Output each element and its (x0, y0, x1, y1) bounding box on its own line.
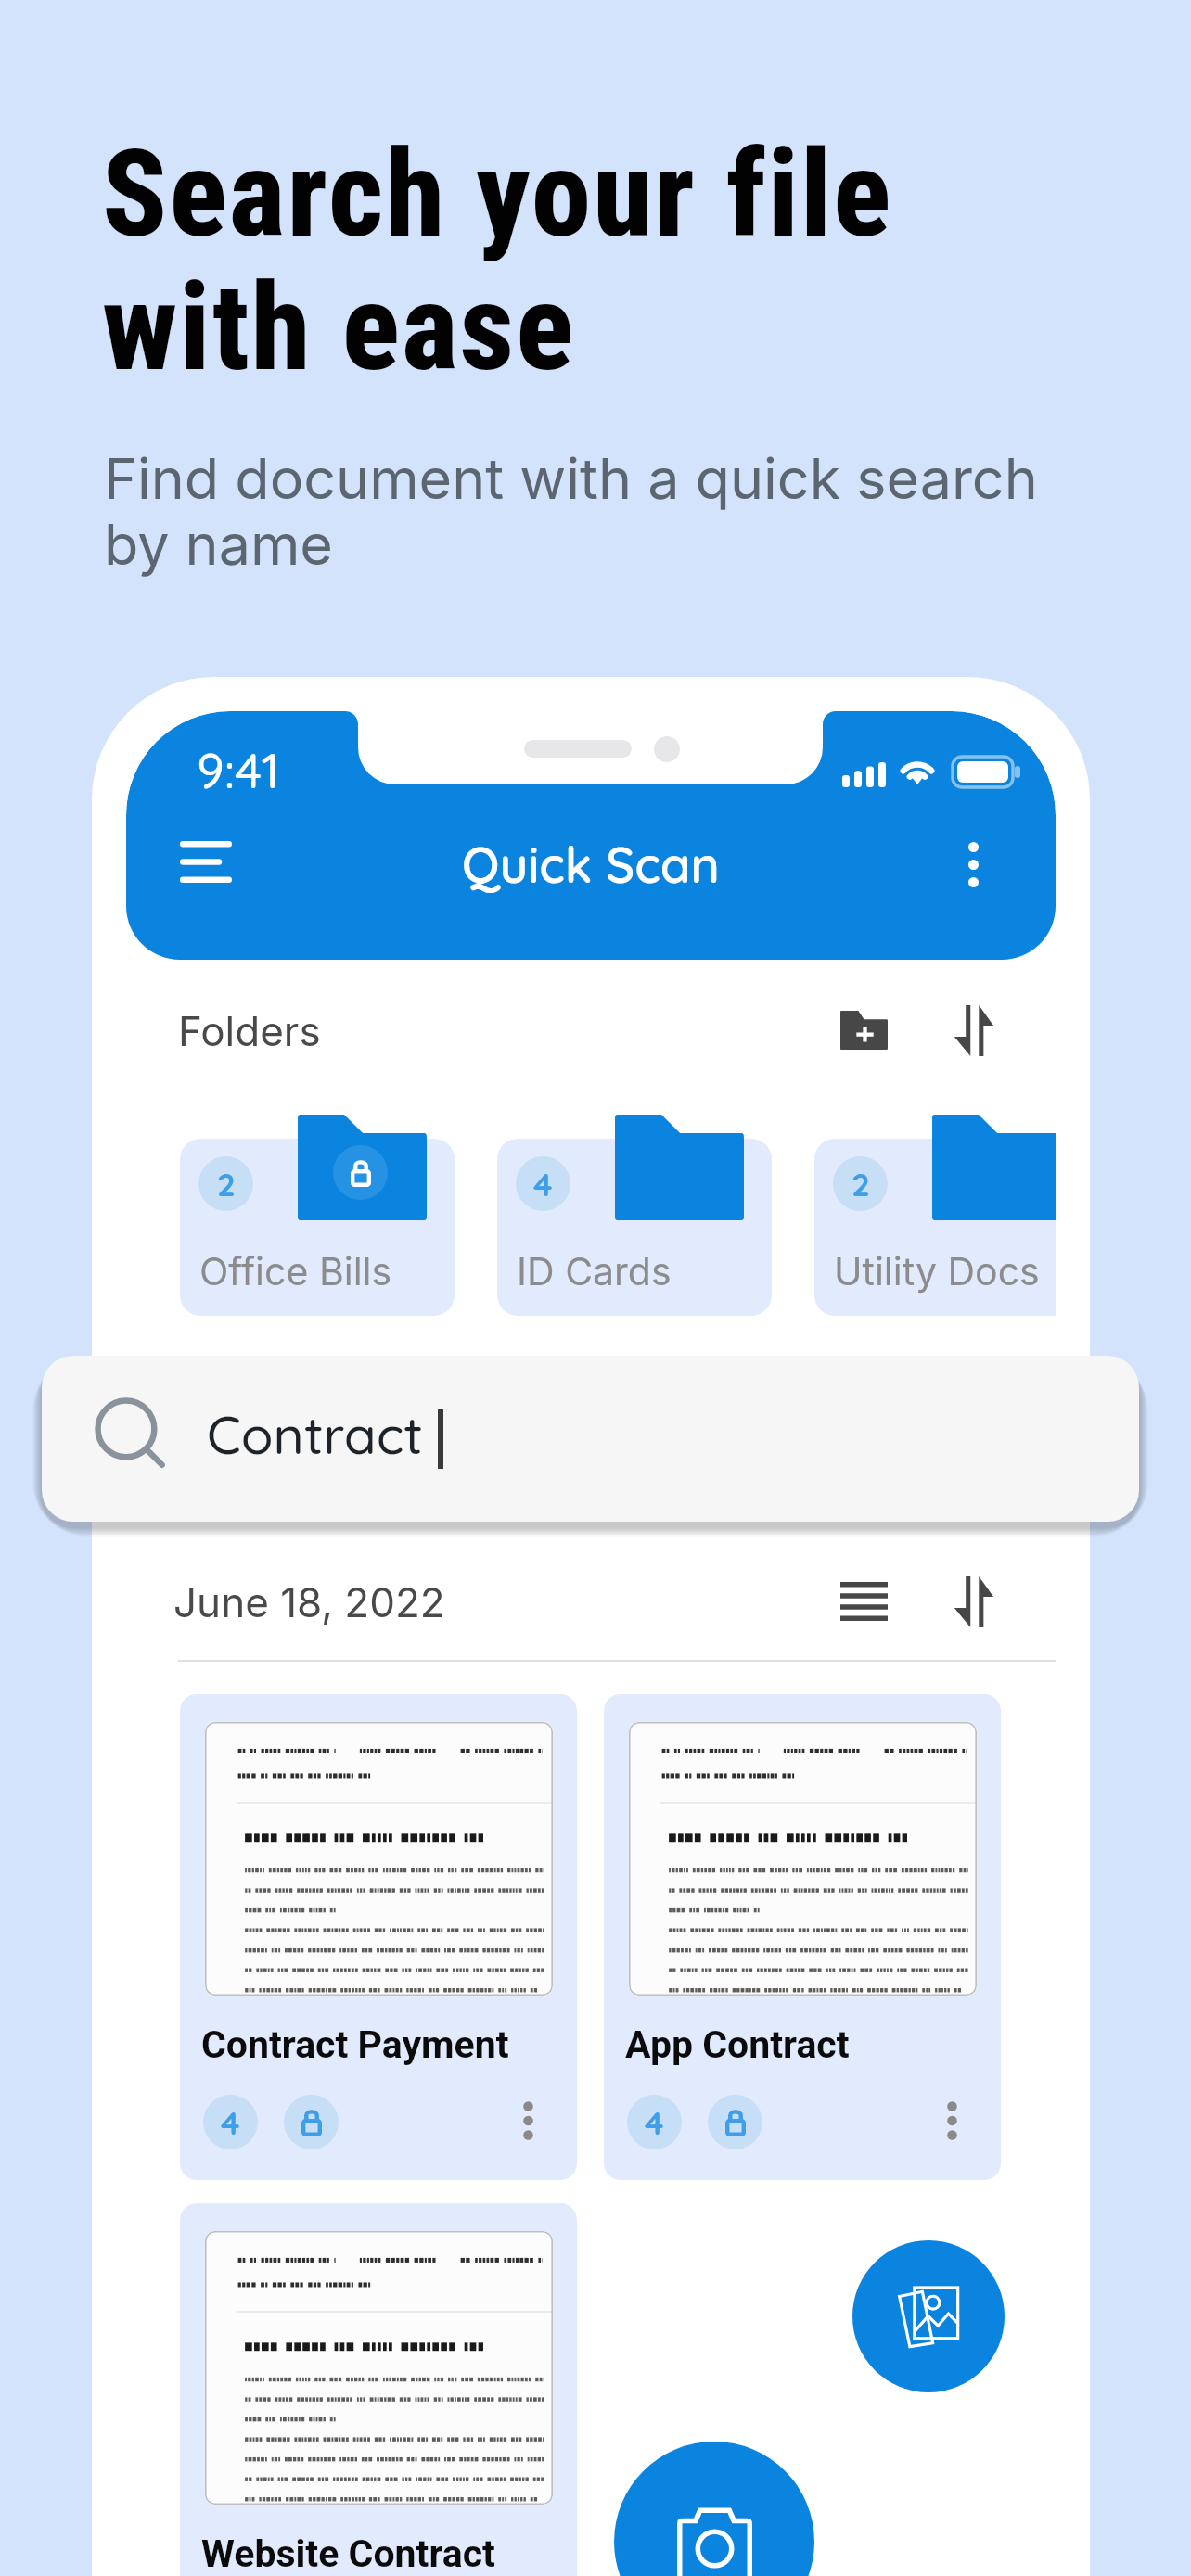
staticText: App Contract (625, 2022, 850, 2067)
staticText: Website Contract (201, 2531, 495, 2576)
button[interactable]: Menu (145, 811, 250, 917)
staticText: Search your file with ease (102, 124, 893, 398)
staticText: Folders (178, 1006, 321, 1055)
button[interactable]: List view (822, 1560, 905, 1643)
staticText: 2 (217, 1164, 236, 1205)
staticText: Contract (207, 1401, 424, 1467)
button[interactable]: Contract (42, 1356, 1139, 1522)
button[interactable]: Website Contract (180, 2203, 577, 2576)
staticText: June 18, 2022 (173, 1577, 445, 1626)
button[interactable]: Scan with camera (614, 2442, 814, 2576)
staticText: 4 (533, 1164, 553, 1205)
staticText: Contract Payment (201, 2022, 509, 2067)
button[interactable]: 2 (180, 1139, 455, 1316)
staticText: Utility Docs (834, 1248, 1040, 1294)
staticText: ID Cards (517, 1248, 672, 1294)
staticText: 2 (852, 1164, 870, 1205)
staticText: 4 (221, 2102, 240, 2143)
button[interactable]: Contract Payment (180, 1694, 577, 2180)
staticText: 4 (645, 2102, 664, 2143)
button[interactable]: Pick from gallery (852, 2240, 1005, 2392)
button[interactable]: More (925, 2093, 980, 2148)
button[interactable]: Sort (932, 1560, 1016, 1643)
button[interactable]: More options (928, 820, 1018, 909)
button[interactable]: More (501, 2093, 556, 2148)
button[interactable]: 4 (497, 1139, 772, 1316)
button[interactable]: 2 (814, 1139, 1056, 1316)
staticText: Find document with a quick search by nam… (104, 444, 1038, 579)
staticText: Office Bills (199, 1248, 392, 1294)
staticText: Quick Scan (462, 834, 720, 895)
button[interactable]: Sort (932, 988, 1016, 1072)
button[interactable]: New folder (822, 988, 905, 1072)
button[interactable]: App Contract (604, 1694, 1001, 2180)
staticText: 9:41 (197, 739, 280, 800)
